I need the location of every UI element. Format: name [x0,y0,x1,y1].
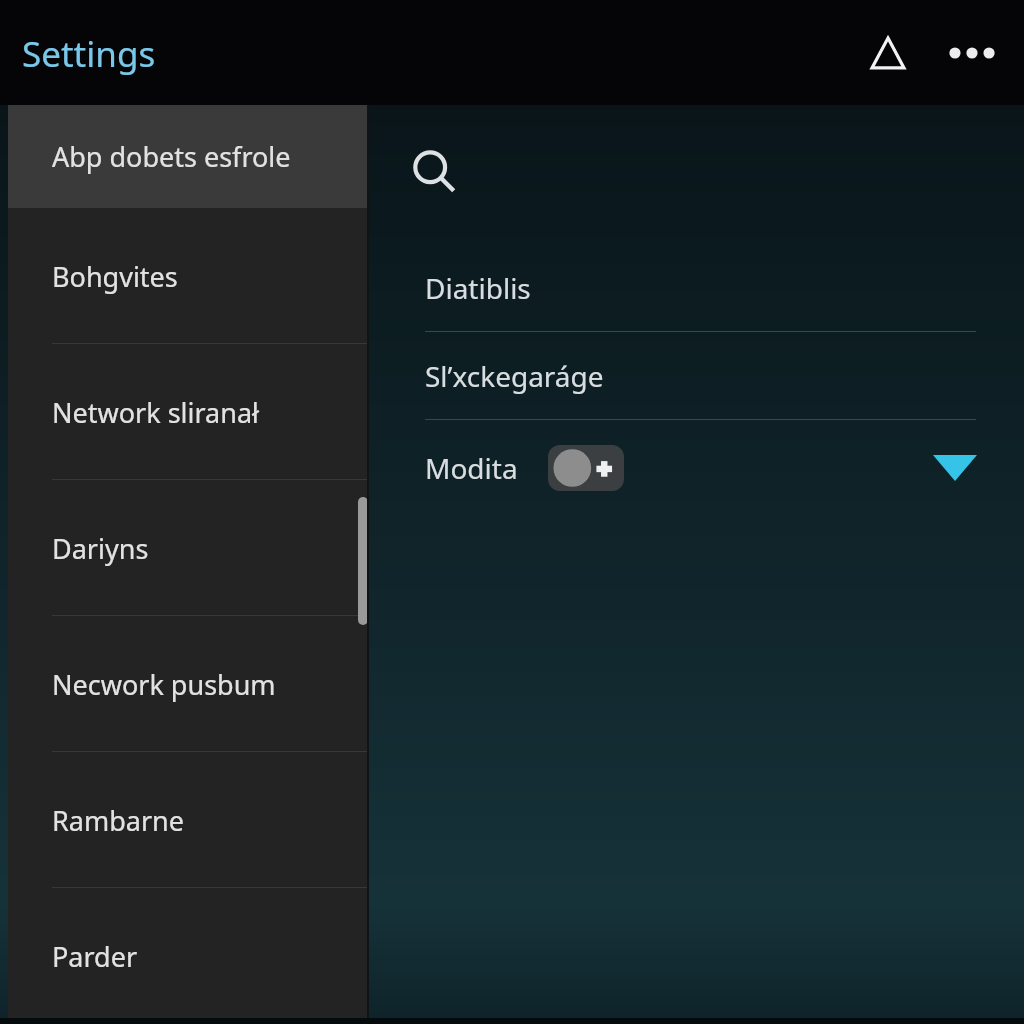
button[interactable]: Expand [926,439,984,497]
staticText: Sl’xckegaráge [425,357,604,395]
staticText: Parder [52,938,138,975]
staticText: Bohgvites [52,258,178,295]
button[interactable]: Modita [369,420,1024,516]
button[interactable]: Network sliranał [8,344,369,480]
staticText: Network sliranał [52,394,260,431]
button[interactable]: Sl’xckegaráge [369,332,1024,419]
staticText: Rambarne [52,802,185,839]
button[interactable]: Toggle [548,445,624,491]
button[interactable]: Necwork pusbum [8,616,369,752]
button[interactable]: Diatiblis [369,245,1024,331]
staticText: Modita [425,449,518,487]
staticText: Settings [22,30,156,78]
button[interactable]: Abp dobets esfrole [8,105,369,208]
button[interactable]: More options [936,17,1008,89]
button[interactable]: Rambarne [8,752,369,888]
staticText: Dariyns [52,530,149,567]
staticText: Necwork pusbum [52,666,276,703]
button[interactable]: Dariyns [8,480,369,616]
staticText: Diatiblis [425,269,531,307]
button[interactable]: Parder [8,888,369,1024]
staticText: Abp dobets esfrole [52,138,291,175]
button[interactable]: Navigation [852,17,924,89]
button[interactable]: Search [411,137,483,209]
button[interactable]: Bohgvites [8,208,369,344]
